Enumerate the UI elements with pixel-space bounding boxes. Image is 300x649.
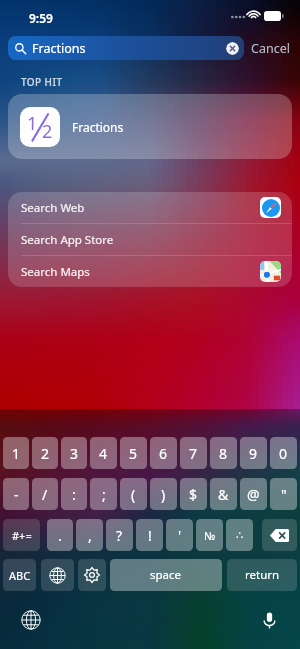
staticText: 6 [159, 444, 168, 463]
button[interactable]: / [32, 478, 58, 510]
button[interactable]: 1 [8, 94, 292, 159]
staticText: 0 [279, 444, 288, 463]
staticText: ? [116, 526, 123, 545]
staticText: 1 [27, 111, 38, 136]
staticText: , [88, 526, 92, 545]
staticText: ; [102, 485, 106, 504]
staticText: ( [131, 485, 136, 504]
staticText: ! [148, 526, 152, 545]
button[interactable]: ; [90, 478, 117, 510]
button[interactable]: #+= [3, 519, 40, 551]
button[interactable]: Dictation [253, 604, 285, 636]
staticText: Search Maps [21, 264, 90, 280]
button[interactable]: space [110, 559, 222, 591]
button[interactable]: ! [136, 519, 163, 551]
staticText: 3 [70, 444, 79, 463]
staticText: . [58, 526, 62, 545]
staticText: 2 [41, 444, 50, 463]
staticText: ' [178, 526, 182, 545]
staticText: 9 [249, 444, 258, 463]
staticText: / [42, 485, 48, 504]
staticText: 7 [189, 444, 198, 463]
button[interactable]: 1 [3, 437, 29, 469]
staticText: 2 [42, 119, 53, 144]
button[interactable]: ABC [3, 559, 36, 591]
button[interactable]: " [270, 478, 297, 510]
button[interactable]: Search Maps [8, 256, 292, 287]
button[interactable]: 2 [32, 437, 58, 469]
button[interactable]: @ [240, 478, 267, 510]
staticText: 8 [219, 444, 228, 463]
button[interactable]: , [76, 519, 103, 551]
button[interactable]: № [196, 519, 223, 551]
button[interactable]: 6 [150, 437, 177, 469]
button[interactable]: 4 [90, 437, 117, 469]
staticText: Cancel [251, 40, 290, 57]
staticText: ABC [9, 568, 31, 583]
button[interactable]: Backspace [262, 519, 297, 551]
button[interactable]: ( [120, 478, 147, 510]
button[interactable]: Search App Store [8, 224, 292, 255]
staticText: Fractions [32, 40, 86, 57]
button[interactable]: ? [106, 519, 133, 551]
staticText: TOP HIT [21, 75, 63, 89]
button[interactable]: Change keyboard [41, 559, 74, 591]
staticText: : [72, 485, 76, 504]
staticText: " [281, 485, 287, 504]
staticText: ∴ [236, 529, 243, 542]
button[interactable]: Emoji keyboard [15, 604, 47, 636]
button[interactable]: 8 [210, 437, 237, 469]
staticText: 4 [99, 444, 108, 463]
button[interactable]: ' [166, 519, 193, 551]
button[interactable]: Clear text [226, 42, 239, 55]
button[interactable]: Keyboard settings [78, 559, 106, 591]
staticText: Fractions [72, 119, 124, 135]
button[interactable]: . [47, 519, 73, 551]
button[interactable]: Cancel [244, 36, 297, 60]
button[interactable]: Fractions [8, 36, 244, 60]
staticText: @ [247, 485, 260, 504]
staticText: 1 [12, 444, 21, 463]
staticText: 5 [129, 444, 138, 463]
button[interactable]: & [210, 478, 237, 510]
button[interactable]: Search Web [8, 192, 292, 223]
staticText: $ [189, 485, 198, 504]
staticText: & [218, 485, 229, 504]
button[interactable]: return [227, 559, 297, 591]
button[interactable]: : [61, 478, 87, 510]
button[interactable]: 7 [180, 437, 207, 469]
button[interactable]: 9 [240, 437, 267, 469]
button[interactable]: 0 [270, 437, 297, 469]
staticText: 9:59 [29, 10, 53, 26]
button[interactable]: ∴ [226, 519, 253, 551]
button[interactable]: - [3, 478, 29, 510]
staticText: space [150, 567, 182, 583]
staticText: № [204, 528, 216, 543]
staticText: #+= [12, 528, 32, 543]
staticText: Search Web [21, 200, 85, 216]
staticText: return [245, 567, 280, 583]
button[interactable]: 3 [61, 437, 87, 469]
button[interactable]: 5 [120, 437, 147, 469]
button[interactable]: ) [150, 478, 177, 510]
button[interactable]: $ [180, 478, 207, 510]
staticText: ) [161, 485, 166, 504]
staticText: - [14, 485, 19, 504]
staticText: Search App Store [21, 232, 114, 248]
